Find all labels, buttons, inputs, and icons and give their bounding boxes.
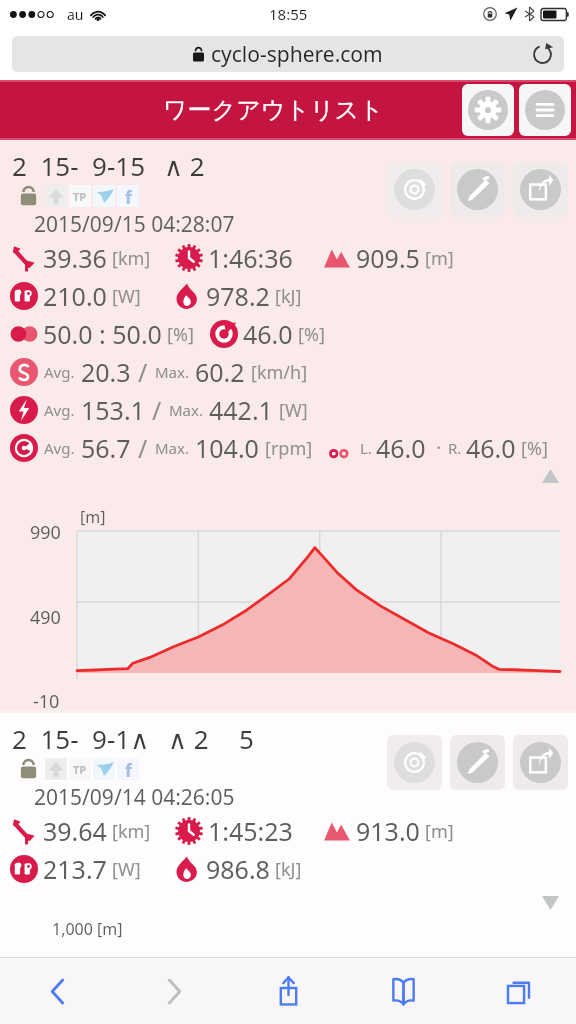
staticText: [kJ]: [275, 284, 302, 309]
button[interactable]: Bookmarks: [346, 958, 461, 1024]
staticText: 2015/09/15 04:28:07: [34, 210, 235, 239]
staticText: f: [125, 185, 132, 207]
staticText: 210.0: [43, 279, 107, 313]
staticText: [W]: [112, 857, 141, 882]
button[interactable]: Collapse: [542, 469, 559, 483]
staticText: R.: [448, 438, 462, 458]
staticText: 39.64: [43, 814, 107, 848]
staticText: TP: [73, 189, 87, 204]
staticText: 30: [432, 710, 453, 735]
button[interactable]: Tabs: [461, 958, 576, 1024]
staticText: 104.0: [195, 431, 259, 465]
staticText: 1,000: [52, 918, 93, 940]
button[interactable]: Share: [513, 735, 568, 790]
staticText: au: [67, 5, 84, 24]
button[interactable]: Reload: [532, 44, 553, 65]
button[interactable]: Expand: [542, 896, 559, 910]
staticText: 39.36: [43, 241, 107, 275]
staticText: 1:45:23: [208, 814, 293, 848]
staticText: 1:46:36: [208, 241, 293, 275]
button[interactable]: Forward: [116, 958, 231, 1024]
staticText: [%]: [298, 322, 325, 347]
button[interactable]: 2 15- 9-1∧: [0, 710, 576, 940]
staticText: 978.2: [206, 279, 270, 313]
staticText: 46.0: [243, 317, 293, 351]
staticText: 909.5: [356, 241, 420, 275]
button[interactable]: Share: [231, 958, 346, 1024]
button[interactable]: Sync: [387, 735, 442, 790]
staticText: 60.2: [195, 355, 245, 389]
staticText: 913.0: [356, 814, 420, 848]
staticText: [W]: [279, 398, 308, 423]
staticText: -10: [33, 689, 60, 714]
staticText: 442.1: [209, 393, 273, 427]
staticText: [m]: [80, 506, 106, 528]
staticText: /: [138, 355, 148, 389]
staticText: ・: [431, 439, 446, 458]
staticText: ∧ 2: [164, 148, 205, 183]
staticText: 5: [239, 721, 254, 756]
staticText: 2015/09/14 04:26:05: [34, 783, 235, 812]
button[interactable]: Sync: [387, 162, 442, 217]
staticText: [m]: [97, 918, 123, 940]
staticText: [m]: [425, 246, 454, 271]
staticText: /: [138, 431, 148, 465]
staticText: ワークアウトリスト: [163, 95, 384, 125]
staticText: 56.7: [81, 431, 131, 465]
staticText: [%]: [521, 436, 548, 461]
staticText: ∧ 2: [168, 721, 209, 756]
staticText: 990: [30, 520, 61, 545]
button[interactable]: cyclo-sphere.com: [12, 36, 564, 72]
button[interactable]: Back: [0, 958, 116, 1024]
staticText: cyclo-sphere.com: [211, 40, 383, 69]
staticText: f: [125, 758, 132, 780]
button[interactable]: Edit: [450, 162, 505, 217]
button[interactable]: 2 15- 9-15: [0, 140, 576, 710]
staticText: Max.: [155, 362, 189, 382]
staticText: 50.0 : 50.0: [43, 317, 162, 351]
staticText: 46.0: [376, 431, 426, 465]
staticText: Max.: [155, 438, 189, 458]
button[interactable]: Menu: [519, 84, 571, 136]
staticText: 986.8: [206, 852, 270, 886]
staticText: Avg.: [44, 362, 75, 382]
staticText: L.: [360, 438, 372, 458]
staticText: TP: [73, 762, 87, 777]
button[interactable]: Settings: [462, 84, 514, 136]
staticText: 2 15- 9-1∧: [12, 721, 150, 756]
staticText: [rpm]: [265, 436, 313, 461]
staticText: 20: [311, 710, 332, 735]
staticText: Max.: [169, 400, 203, 420]
staticText: /: [152, 393, 162, 427]
staticText: 10: [189, 710, 210, 735]
staticText: [km]: [112, 819, 151, 844]
staticText: 46.0: [466, 431, 516, 465]
staticText: [%]: [167, 322, 194, 347]
staticText: 20.3: [81, 355, 131, 389]
staticText: 213.7: [43, 852, 107, 886]
staticText: 490: [30, 605, 61, 630]
staticText: Avg.: [44, 438, 75, 458]
staticText: [km/h]: [251, 360, 308, 385]
button[interactable]: Share: [513, 162, 568, 217]
button[interactable]: Edit: [450, 735, 505, 790]
staticText: [W]: [112, 284, 141, 309]
staticText: [km]: [112, 246, 151, 271]
staticText: Avg.: [44, 400, 75, 420]
staticText: 153.1: [81, 393, 145, 427]
staticText: 18:55: [269, 4, 308, 24]
staticText: 2 15- 9-15: [12, 148, 146, 183]
staticText: [kJ]: [275, 857, 302, 882]
staticText: [m]: [425, 819, 454, 844]
staticText: 0 [km]: [70, 710, 124, 735]
